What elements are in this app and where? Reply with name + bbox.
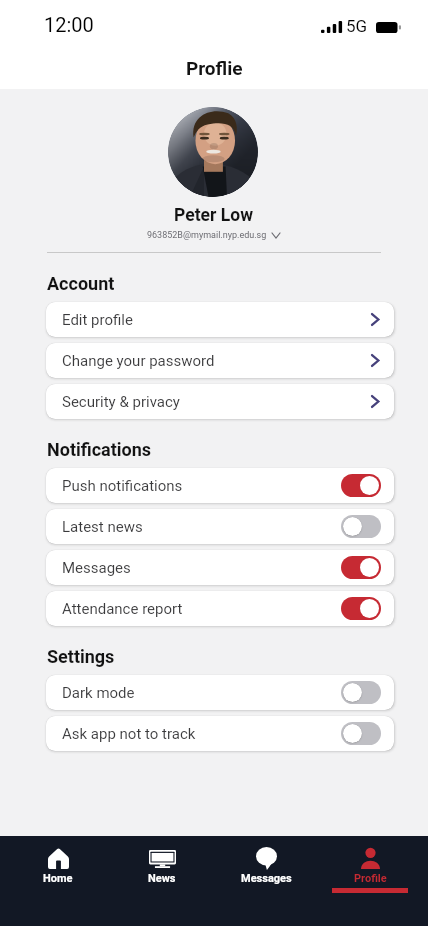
staticText: Peter Low	[174, 205, 253, 226]
button[interactable]: Switch off	[341, 681, 381, 704]
staticText: Proflie	[186, 57, 243, 79]
button[interactable]: Messages	[46, 550, 394, 585]
staticText: Latest news	[62, 518, 143, 536]
staticText: Home	[43, 872, 73, 885]
staticText: 5G	[346, 16, 368, 36]
staticText: Push notifications	[62, 477, 183, 495]
button[interactable]: Change your password	[46, 343, 394, 378]
staticText: Edit profile	[62, 311, 133, 329]
staticText: Dark mode	[62, 684, 135, 702]
staticText: Ask app not to track	[62, 725, 196, 743]
button[interactable]: Switch off	[341, 515, 381, 538]
button[interactable]: Dark mode	[46, 675, 394, 710]
button[interactable]: Profile	[318, 836, 422, 926]
staticText: Security & privacy	[62, 393, 180, 411]
staticText: News	[148, 872, 176, 885]
staticText: 12:00	[44, 13, 94, 36]
button[interactable]: News	[110, 836, 214, 926]
staticText: Account	[47, 273, 115, 294]
staticText: Messages	[241, 872, 292, 885]
staticText: Messages	[62, 559, 131, 577]
button[interactable]: Switch on	[341, 597, 381, 620]
button[interactable]: Switch on	[341, 556, 381, 579]
staticText: Change your password	[62, 352, 215, 370]
button[interactable]: Edit profile	[46, 302, 394, 337]
button[interactable]: Push notifications	[46, 468, 394, 503]
button[interactable]: Ask app not to track	[46, 716, 394, 751]
button[interactable]: Profile photo	[168, 107, 258, 197]
button[interactable]: Switch off	[341, 722, 381, 745]
button[interactable]: Switch on	[341, 474, 381, 497]
staticText: 963852B@mymail.nyp.edu.sg	[147, 230, 267, 241]
staticText: Settings	[47, 646, 115, 667]
button[interactable]: Messages	[214, 836, 318, 926]
button[interactable]: 963852B@mymail.nyp.edu.sg	[147, 230, 280, 241]
staticText: Attendance report	[62, 600, 183, 618]
button[interactable]: Attendance report	[46, 591, 394, 626]
staticText: Profile	[354, 872, 387, 885]
button[interactable]: Latest news	[46, 509, 394, 544]
button[interactable]: Security & privacy	[46, 384, 394, 419]
button[interactable]: Home	[6, 836, 110, 926]
staticText: Notifications	[47, 439, 152, 460]
